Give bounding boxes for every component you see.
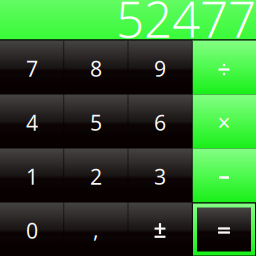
staticText: 9 bbox=[154, 54, 166, 83]
button[interactable]: 3 bbox=[128, 148, 192, 202]
button[interactable]: Equals bbox=[192, 202, 256, 256]
staticText: 0 bbox=[26, 216, 38, 245]
staticText: 52477 bbox=[116, 0, 256, 51]
staticText: , bbox=[93, 215, 99, 244]
button[interactable]: , bbox=[64, 202, 128, 256]
staticText: 7 bbox=[26, 54, 38, 83]
staticText: 3 bbox=[154, 162, 166, 191]
button[interactable]: Divide bbox=[192, 40, 256, 94]
staticText: 6 bbox=[154, 108, 166, 137]
staticText: × bbox=[217, 107, 230, 137]
staticText: 2 bbox=[90, 162, 102, 191]
button[interactable]: 7 bbox=[0, 40, 64, 94]
button[interactable]: 5 bbox=[64, 94, 128, 148]
button[interactable]: 8 bbox=[64, 40, 128, 94]
staticText: 8 bbox=[90, 54, 102, 83]
staticText: 4 bbox=[26, 108, 38, 137]
staticText: 1 bbox=[26, 162, 38, 191]
button[interactable]: Multiply bbox=[192, 94, 256, 148]
button[interactable]: 9 bbox=[128, 40, 192, 94]
button[interactable]: 6 bbox=[128, 94, 192, 148]
button[interactable]: 2 bbox=[64, 148, 128, 202]
button[interactable]: 1 bbox=[0, 148, 64, 202]
button[interactable]: Plus or minus bbox=[128, 202, 192, 256]
button[interactable]: 0 bbox=[0, 202, 64, 256]
staticText: 5 bbox=[90, 108, 102, 137]
button[interactable]: Minus bbox=[192, 148, 256, 202]
button[interactable]: 4 bbox=[0, 94, 64, 148]
